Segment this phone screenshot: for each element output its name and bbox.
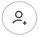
button[interactable]: Add Contact bbox=[0, 0, 40, 37]
